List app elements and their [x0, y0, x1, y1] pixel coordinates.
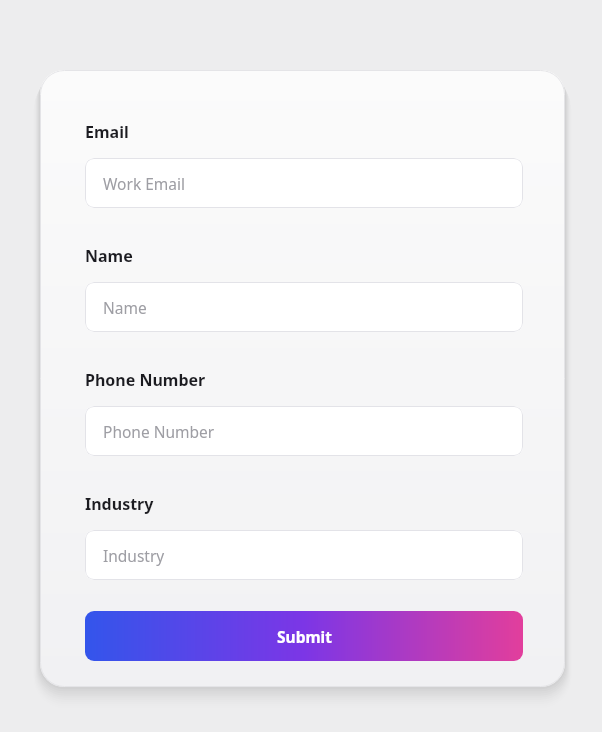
staticText: Phone Number	[103, 421, 215, 442]
staticText: Industry	[85, 493, 154, 515]
staticText: Phone Number	[85, 369, 206, 391]
staticText: Industry	[103, 545, 165, 566]
staticText: Work Email	[103, 173, 185, 194]
staticText: Submit	[277, 626, 332, 647]
staticText: Name	[85, 245, 133, 267]
button[interactable]: Industry	[85, 530, 523, 580]
staticText: Email	[85, 121, 129, 143]
button[interactable]: Submit	[85, 611, 523, 661]
staticText: Name	[103, 297, 147, 318]
button[interactable]: Work Email	[85, 158, 523, 208]
button[interactable]: Name	[85, 282, 523, 332]
button[interactable]: Phone Number	[85, 406, 523, 456]
